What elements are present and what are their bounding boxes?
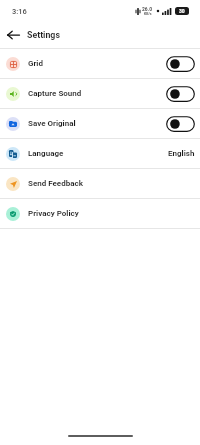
staticText: Send Feedback	[28, 179, 83, 188]
button[interactable]: Back	[2, 22, 24, 48]
button[interactable]: Toggle	[166, 56, 195, 72]
button[interactable]: Save Original	[0, 109, 200, 138]
button[interactable]: Send Feedback	[0, 169, 200, 198]
staticText: Capture Sound	[28, 89, 82, 98]
button[interactable]: Toggle	[166, 86, 195, 102]
staticText: KB/s	[144, 12, 152, 16]
button[interactable]: Language	[0, 139, 200, 168]
staticText: Settings	[27, 30, 60, 40]
staticText: Grid	[28, 59, 44, 68]
button[interactable]: Grid	[0, 49, 200, 78]
staticText: Privacy Policy	[28, 209, 79, 218]
staticText: 26.0	[142, 6, 153, 12]
staticText: Save Original	[28, 119, 76, 128]
button[interactable]: Capture Sound	[0, 79, 200, 108]
button[interactable]: Toggle	[166, 116, 195, 132]
staticText: 3:16	[12, 7, 27, 16]
staticText: English	[168, 149, 195, 158]
staticText: 30	[179, 8, 185, 14]
button[interactable]: Privacy Policy	[0, 199, 200, 228]
staticText: Language	[28, 149, 64, 158]
